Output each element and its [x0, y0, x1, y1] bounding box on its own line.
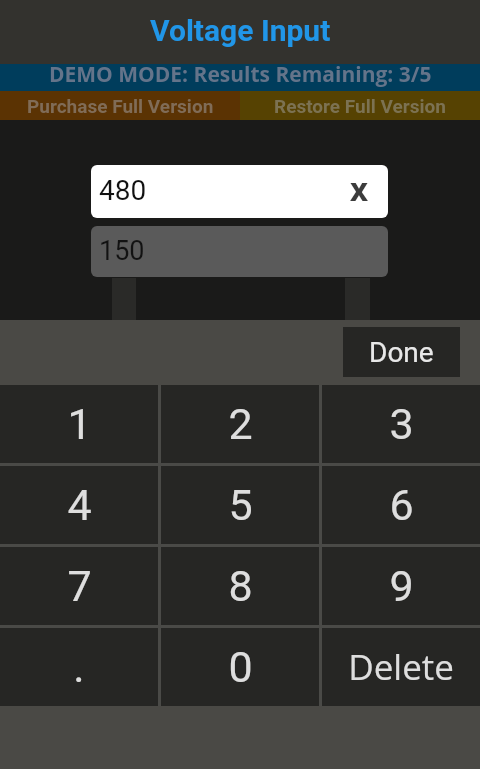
button[interactable]: 4: [0, 466, 158, 544]
button[interactable]: Done: [343, 327, 460, 377]
button[interactable]: 8: [161, 547, 319, 625]
button[interactable]: 9: [322, 547, 480, 625]
staticText: 5: [228, 480, 253, 530]
staticText: 4: [67, 480, 92, 530]
button[interactable]: Purchase Full Version: [0, 91, 240, 120]
staticText: Delete: [348, 643, 454, 691]
staticText: 7: [67, 561, 92, 611]
button[interactable]: 7: [0, 547, 158, 625]
button[interactable]: 0: [161, 628, 319, 706]
staticText: 6: [389, 480, 414, 530]
staticText: 3: [389, 399, 414, 449]
staticText: 8: [228, 561, 253, 611]
staticText: 480: [99, 174, 147, 207]
staticText: DEMO MODE: Results Remaining: 3/5: [49, 60, 432, 87]
staticText: Purchase Full Version: [27, 95, 214, 117]
button[interactable]: 480: [91, 165, 388, 218]
button[interactable]: 2: [161, 385, 319, 463]
button[interactable]: .: [0, 628, 158, 706]
button[interactable]: 3: [322, 385, 480, 463]
button[interactable]: 6: [322, 466, 480, 544]
staticText: Restore Full Version: [274, 95, 446, 117]
staticText: 1: [67, 399, 92, 449]
button[interactable]: 150: [91, 226, 388, 277]
staticText: X: [350, 174, 369, 206]
button[interactable]: Restore Full Version: [240, 91, 480, 120]
staticText: 0: [228, 642, 253, 692]
button[interactable]: 1: [0, 385, 158, 463]
staticText: Voltage Input: [150, 13, 331, 48]
button[interactable]: 5: [161, 466, 319, 544]
staticText: 150: [99, 235, 145, 267]
staticText: .: [73, 642, 85, 692]
staticText: Done: [369, 336, 434, 369]
button[interactable]: Delete: [322, 628, 480, 706]
staticText: 9: [389, 561, 414, 611]
staticText: 2: [228, 399, 253, 449]
button[interactable]: Clear: [343, 176, 375, 208]
